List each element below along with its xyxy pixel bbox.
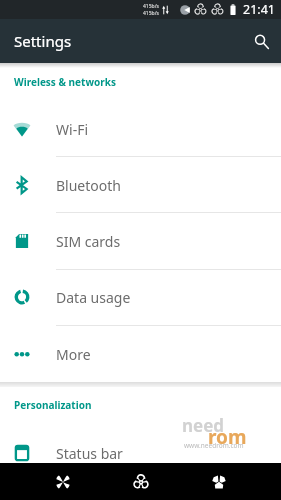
button[interactable]: Data usage — [0, 269, 281, 325]
button[interactable]: SIM cards — [0, 213, 281, 269]
button[interactable]: Recents — [195, 463, 243, 500]
button[interactable]: More — [0, 326, 281, 382]
staticText: Data usage — [56, 288, 131, 307]
staticText: Status bar — [56, 444, 123, 463]
staticText: Settings — [14, 31, 72, 51]
staticText: Bluetooth — [56, 176, 121, 195]
button[interactable]: Home — [117, 463, 165, 500]
staticText: need — [182, 414, 225, 437]
staticText: 415b/s — [143, 10, 159, 17]
button[interactable]: Status bar — [0, 425, 281, 481]
staticText: Wireless & networks — [14, 75, 116, 89]
button[interactable]: Wi-Fi — [0, 101, 281, 157]
staticText: 415b/s — [143, 3, 159, 10]
button[interactable]: Search — [241, 19, 281, 63]
staticText: rom — [208, 424, 247, 450]
button[interactable]: Bluetooth — [0, 157, 281, 213]
staticText: www.needrom.com — [184, 441, 244, 450]
staticText: Personalization — [14, 398, 92, 412]
staticText: 21:41 — [243, 1, 275, 18]
button[interactable]: Back — [39, 463, 87, 500]
staticText: SIM cards — [56, 232, 121, 251]
staticText: More — [56, 345, 91, 364]
staticText: Wi-Fi — [56, 120, 89, 139]
